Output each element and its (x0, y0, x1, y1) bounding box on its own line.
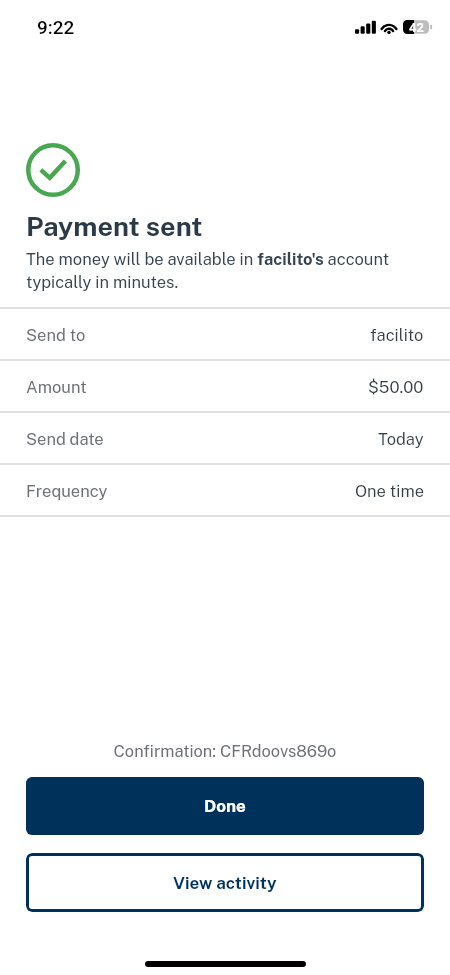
staticText: View activity (173, 873, 277, 893)
button[interactable]: Send date (0, 413, 450, 463)
staticText: Send to (26, 325, 86, 344)
button[interactable]: Done (26, 777, 424, 835)
staticText: facilito (370, 325, 424, 344)
staticText: Payment sent (26, 210, 203, 242)
other: Signal, Wi-Fi and battery status (354, 19, 434, 35)
staticText: $50.00 (368, 377, 424, 396)
button[interactable]: View activity (26, 853, 424, 912)
staticText: The money will be available in facilito'… (26, 249, 430, 291)
button[interactable]: Frequency (0, 465, 450, 515)
staticText: Frequency (26, 481, 108, 500)
staticText: Send date (26, 429, 104, 448)
staticText: Done (204, 796, 246, 816)
staticText: Amount (26, 377, 87, 396)
staticText: 42 (409, 20, 424, 34)
staticText: Today (378, 429, 424, 448)
staticText: 9:22 (37, 16, 75, 38)
button[interactable]: Send to (0, 309, 450, 359)
staticText: One time (355, 481, 424, 500)
button[interactable]: Amount (0, 361, 450, 411)
staticText: Confirmation: CFRdoovs869o (0, 741, 450, 760)
